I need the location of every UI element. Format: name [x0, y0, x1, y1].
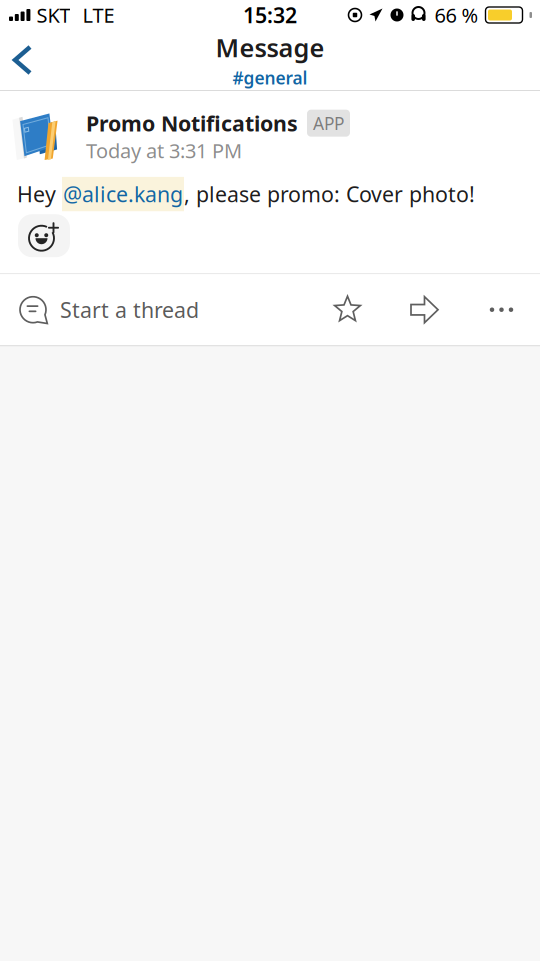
button[interactable]: Add reaction — [18, 214, 70, 257]
staticText: 66 % — [434, 2, 478, 28]
staticText: Hey — [17, 180, 62, 208]
staticText: Today at 3:31 PM — [86, 137, 242, 164]
staticText: Message — [215, 31, 324, 64]
button[interactable]: Back — [0, 32, 50, 88]
staticText: @alice.kang — [63, 180, 183, 208]
staticText: SKT — [36, 2, 70, 28]
staticText: LTE — [82, 2, 114, 28]
staticText: 15:32 — [243, 1, 297, 29]
staticText: APP — [313, 112, 344, 135]
staticText: #general — [232, 66, 307, 89]
staticText: Promo Notifications — [86, 109, 298, 137]
button[interactable]: Start a thread — [0, 275, 199, 344]
button[interactable]: More options — [463, 275, 540, 345]
button[interactable]: Save — [309, 275, 386, 345]
staticText: Start a thread — [60, 296, 199, 324]
button[interactable]: Share — [386, 275, 463, 345]
staticText: , please promo: Cover photo! — [184, 180, 475, 208]
